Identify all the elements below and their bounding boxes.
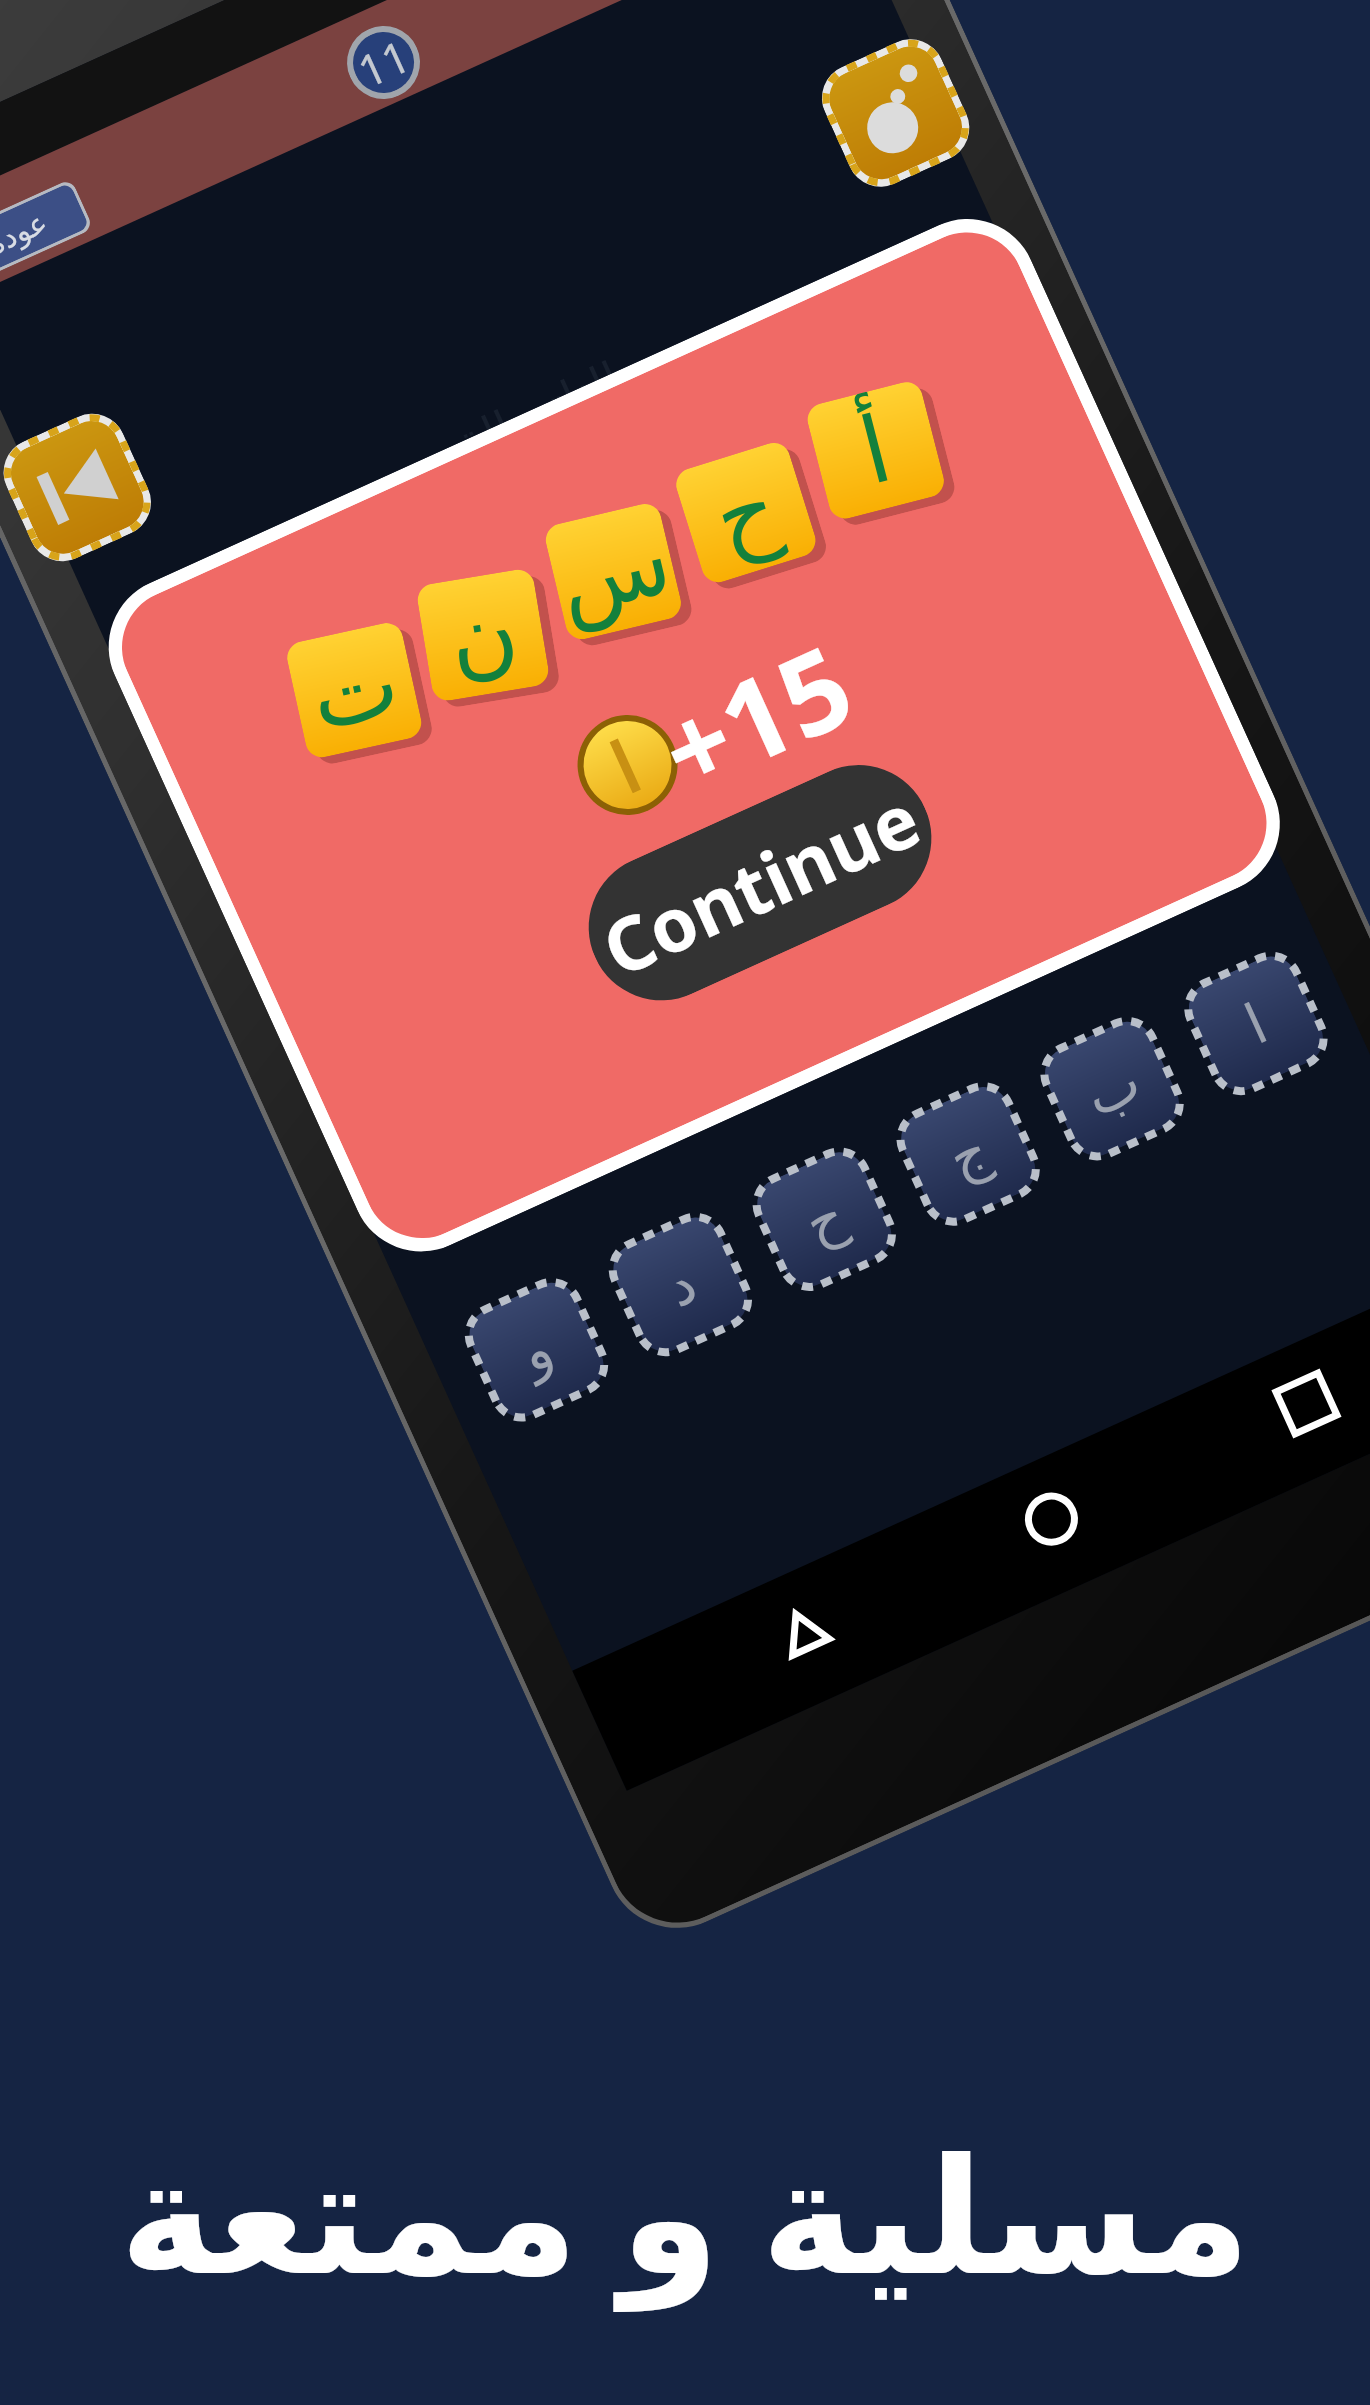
staticText: عودة <box>0 204 53 262</box>
button[interactable]: ب <box>1029 1005 1195 1172</box>
button[interactable]: Back <box>753 1581 854 1682</box>
button[interactable]: و <box>453 1266 620 1433</box>
button[interactable]: د <box>597 1201 764 1368</box>
staticText: مسلية و ممتعة <box>119 2102 1251 2320</box>
button[interactable]: عودة <box>0 182 90 284</box>
staticText: و <box>510 1315 563 1386</box>
button[interactable]: Bomb <box>811 28 980 198</box>
staticText: ا <box>1235 991 1277 1057</box>
staticText: س <box>528 487 700 657</box>
staticText: ح <box>795 1182 855 1257</box>
button[interactable]: Continue <box>565 741 955 1024</box>
staticText: أ <box>833 392 919 510</box>
staticText: Continue <box>586 767 935 999</box>
staticText: 11 <box>348 25 419 101</box>
staticText: ج <box>938 1117 999 1191</box>
staticText: د <box>656 1250 706 1319</box>
button[interactable]: 11 <box>343 22 424 103</box>
staticText: ب <box>1075 1048 1150 1129</box>
staticText: ت <box>281 612 429 769</box>
staticText: ح <box>689 446 802 580</box>
staticText: الناتج القديم <box>379 344 632 508</box>
button[interactable]: Home <box>1001 1469 1102 1569</box>
button[interactable]: Previous <box>0 403 162 572</box>
button[interactable]: ج <box>885 1071 1052 1237</box>
button[interactable]: ح <box>741 1136 908 1303</box>
button[interactable]: Recents <box>1256 1353 1357 1454</box>
button[interactable]: ا <box>1172 940 1339 1107</box>
staticText: ن <box>416 561 551 710</box>
staticText: +15 <box>636 607 874 823</box>
